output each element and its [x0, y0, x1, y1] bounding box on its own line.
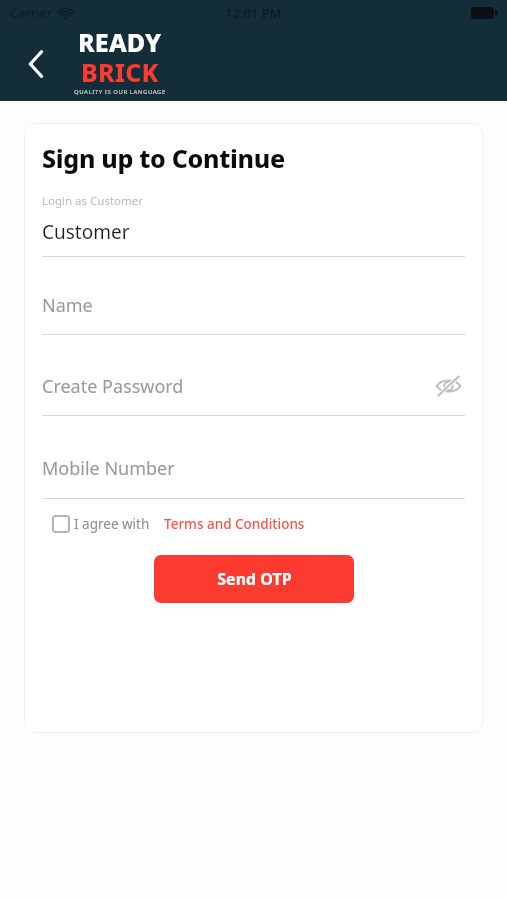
staticText: Mobile Number: [42, 456, 175, 481]
staticText: BRICK: [81, 55, 159, 89]
button[interactable]: Mobile Number: [42, 416, 465, 499]
staticText: Send OTP: [217, 568, 292, 590]
button[interactable]: Back: [14, 42, 58, 86]
button[interactable]: Show password: [431, 369, 465, 403]
other: Agree checkbox: [52, 515, 70, 533]
staticText: QUALITY IS OUR LANGUAGE: [74, 88, 166, 95]
staticText: Sign up to Continue: [42, 141, 285, 175]
staticText: Create Password: [42, 374, 184, 399]
button[interactable]: Create Password: [42, 335, 465, 416]
staticText: Customer: [42, 219, 130, 245]
staticText: Carrier: [10, 4, 53, 22]
staticText: Login as Customer: [42, 193, 144, 209]
staticText: 12:01 PM: [225, 4, 282, 22]
button[interactable]: Name: [42, 257, 465, 335]
staticText: Name: [42, 293, 93, 318]
button[interactable]: Terms and Conditions: [164, 515, 305, 533]
button[interactable]: Agree checkbox: [52, 515, 305, 533]
button[interactable]: Send OTP: [154, 555, 354, 603]
staticText: I agree with: [74, 515, 150, 533]
staticText: READY: [78, 25, 162, 59]
